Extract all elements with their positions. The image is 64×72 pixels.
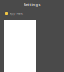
staticText: App Name: [9, 12, 23, 15]
staticText: Settings: [23, 2, 40, 7]
